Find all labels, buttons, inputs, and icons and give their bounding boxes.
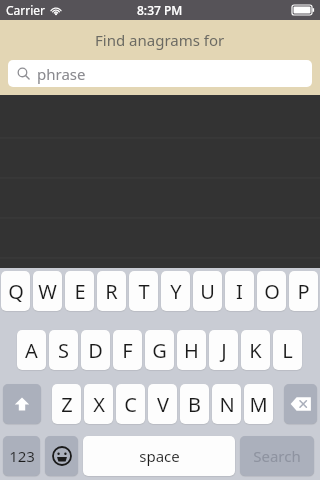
staticText: B [188,391,201,418]
button[interactable]: Y [161,271,190,311]
button[interactable]: Emoji [45,436,78,476]
button[interactable]: R [97,271,126,311]
staticText: H [184,337,199,364]
staticText: phrase [37,64,86,84]
staticText: O [264,278,280,305]
button[interactable]: O [257,271,286,311]
staticText: space [139,446,180,466]
staticText: V [157,391,169,418]
staticText: Search [253,446,301,466]
staticText: D [88,337,103,364]
button[interactable]: K [241,330,270,370]
button[interactable]: L [273,330,302,370]
staticText: C [124,391,137,418]
staticText: U [200,278,215,305]
button[interactable]: S [49,330,78,370]
staticText: Y [170,278,182,305]
button[interactable]: Shift [3,384,41,424]
staticText: 123 [9,446,35,466]
button[interactable]: G [145,330,174,370]
button[interactable]: N [212,384,241,424]
staticText: 8:37 PM [137,2,183,18]
staticText: F [122,337,133,364]
staticText: E [74,278,86,305]
button[interactable]: A [17,330,46,370]
button[interactable]: C [116,384,145,424]
staticText: K [249,337,262,364]
button[interactable]: M [244,384,273,424]
button[interactable]: V [148,384,177,424]
staticText: Q [8,278,24,305]
button[interactable]: W [33,271,62,311]
button[interactable]: space [83,436,235,476]
button[interactable]: I [225,271,254,311]
button[interactable]: J [209,330,238,370]
staticText: G [152,337,167,364]
button[interactable]: T [129,271,158,311]
button[interactable]: Backspace [284,384,317,424]
button[interactable]: D [81,330,110,370]
staticText: L [282,337,293,364]
staticText: J [221,337,227,364]
button[interactable]: phrase [8,60,312,87]
staticText: Z [61,391,73,418]
button[interactable]: 123 [3,436,40,476]
staticText: X [93,391,105,418]
staticText: W [38,278,57,305]
button[interactable]: P [289,271,318,311]
staticText: R [105,278,118,305]
button[interactable]: H [177,330,206,370]
staticText: I [236,278,243,305]
staticText: Carrier [6,2,46,18]
button[interactable]: Z [52,384,81,424]
staticText: Find anagrams for [95,30,225,50]
staticText: A [25,337,38,364]
button[interactable]: Search [240,436,314,476]
staticText: M [249,391,268,418]
button[interactable]: Q [1,271,30,311]
button[interactable]: E [65,271,94,311]
button[interactable]: X [84,384,113,424]
button[interactable]: B [180,384,209,424]
staticText: S [58,337,69,364]
staticText: P [297,278,310,305]
button[interactable]: F [113,330,142,370]
staticText: T [138,278,150,305]
staticText: N [219,391,235,418]
button[interactable]: U [193,271,222,311]
